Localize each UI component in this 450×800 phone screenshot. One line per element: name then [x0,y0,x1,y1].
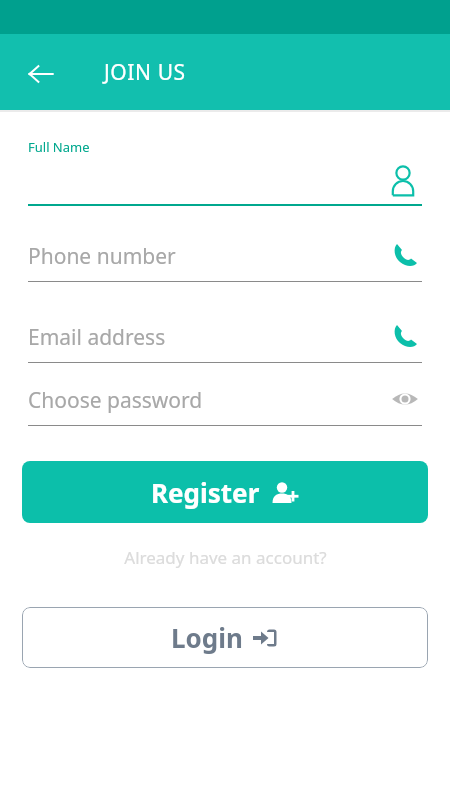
staticText: Choose password [28,386,203,415]
button[interactable]: Person [28,160,422,206]
staticText: Phone number [28,242,176,271]
staticText: Full Name [28,138,90,156]
button[interactable]: Choose password [28,380,422,426]
other: Phone [390,321,420,351]
button[interactable]: Register [22,461,428,523]
button[interactable]: Email address [28,317,422,363]
staticText: Already have an account? [124,546,327,569]
button[interactable]: Back [17,50,65,98]
other: Show password [391,385,419,413]
staticText: Email address [28,323,166,352]
button[interactable]: Login [22,607,428,668]
other: Person [384,162,422,200]
staticText: Register [151,475,260,510]
staticText: JOIN US [104,58,186,87]
staticText: Login [171,620,243,655]
other: Profile [386,164,420,198]
button[interactable]: Phone number [28,236,422,282]
other: Phone [390,240,420,270]
